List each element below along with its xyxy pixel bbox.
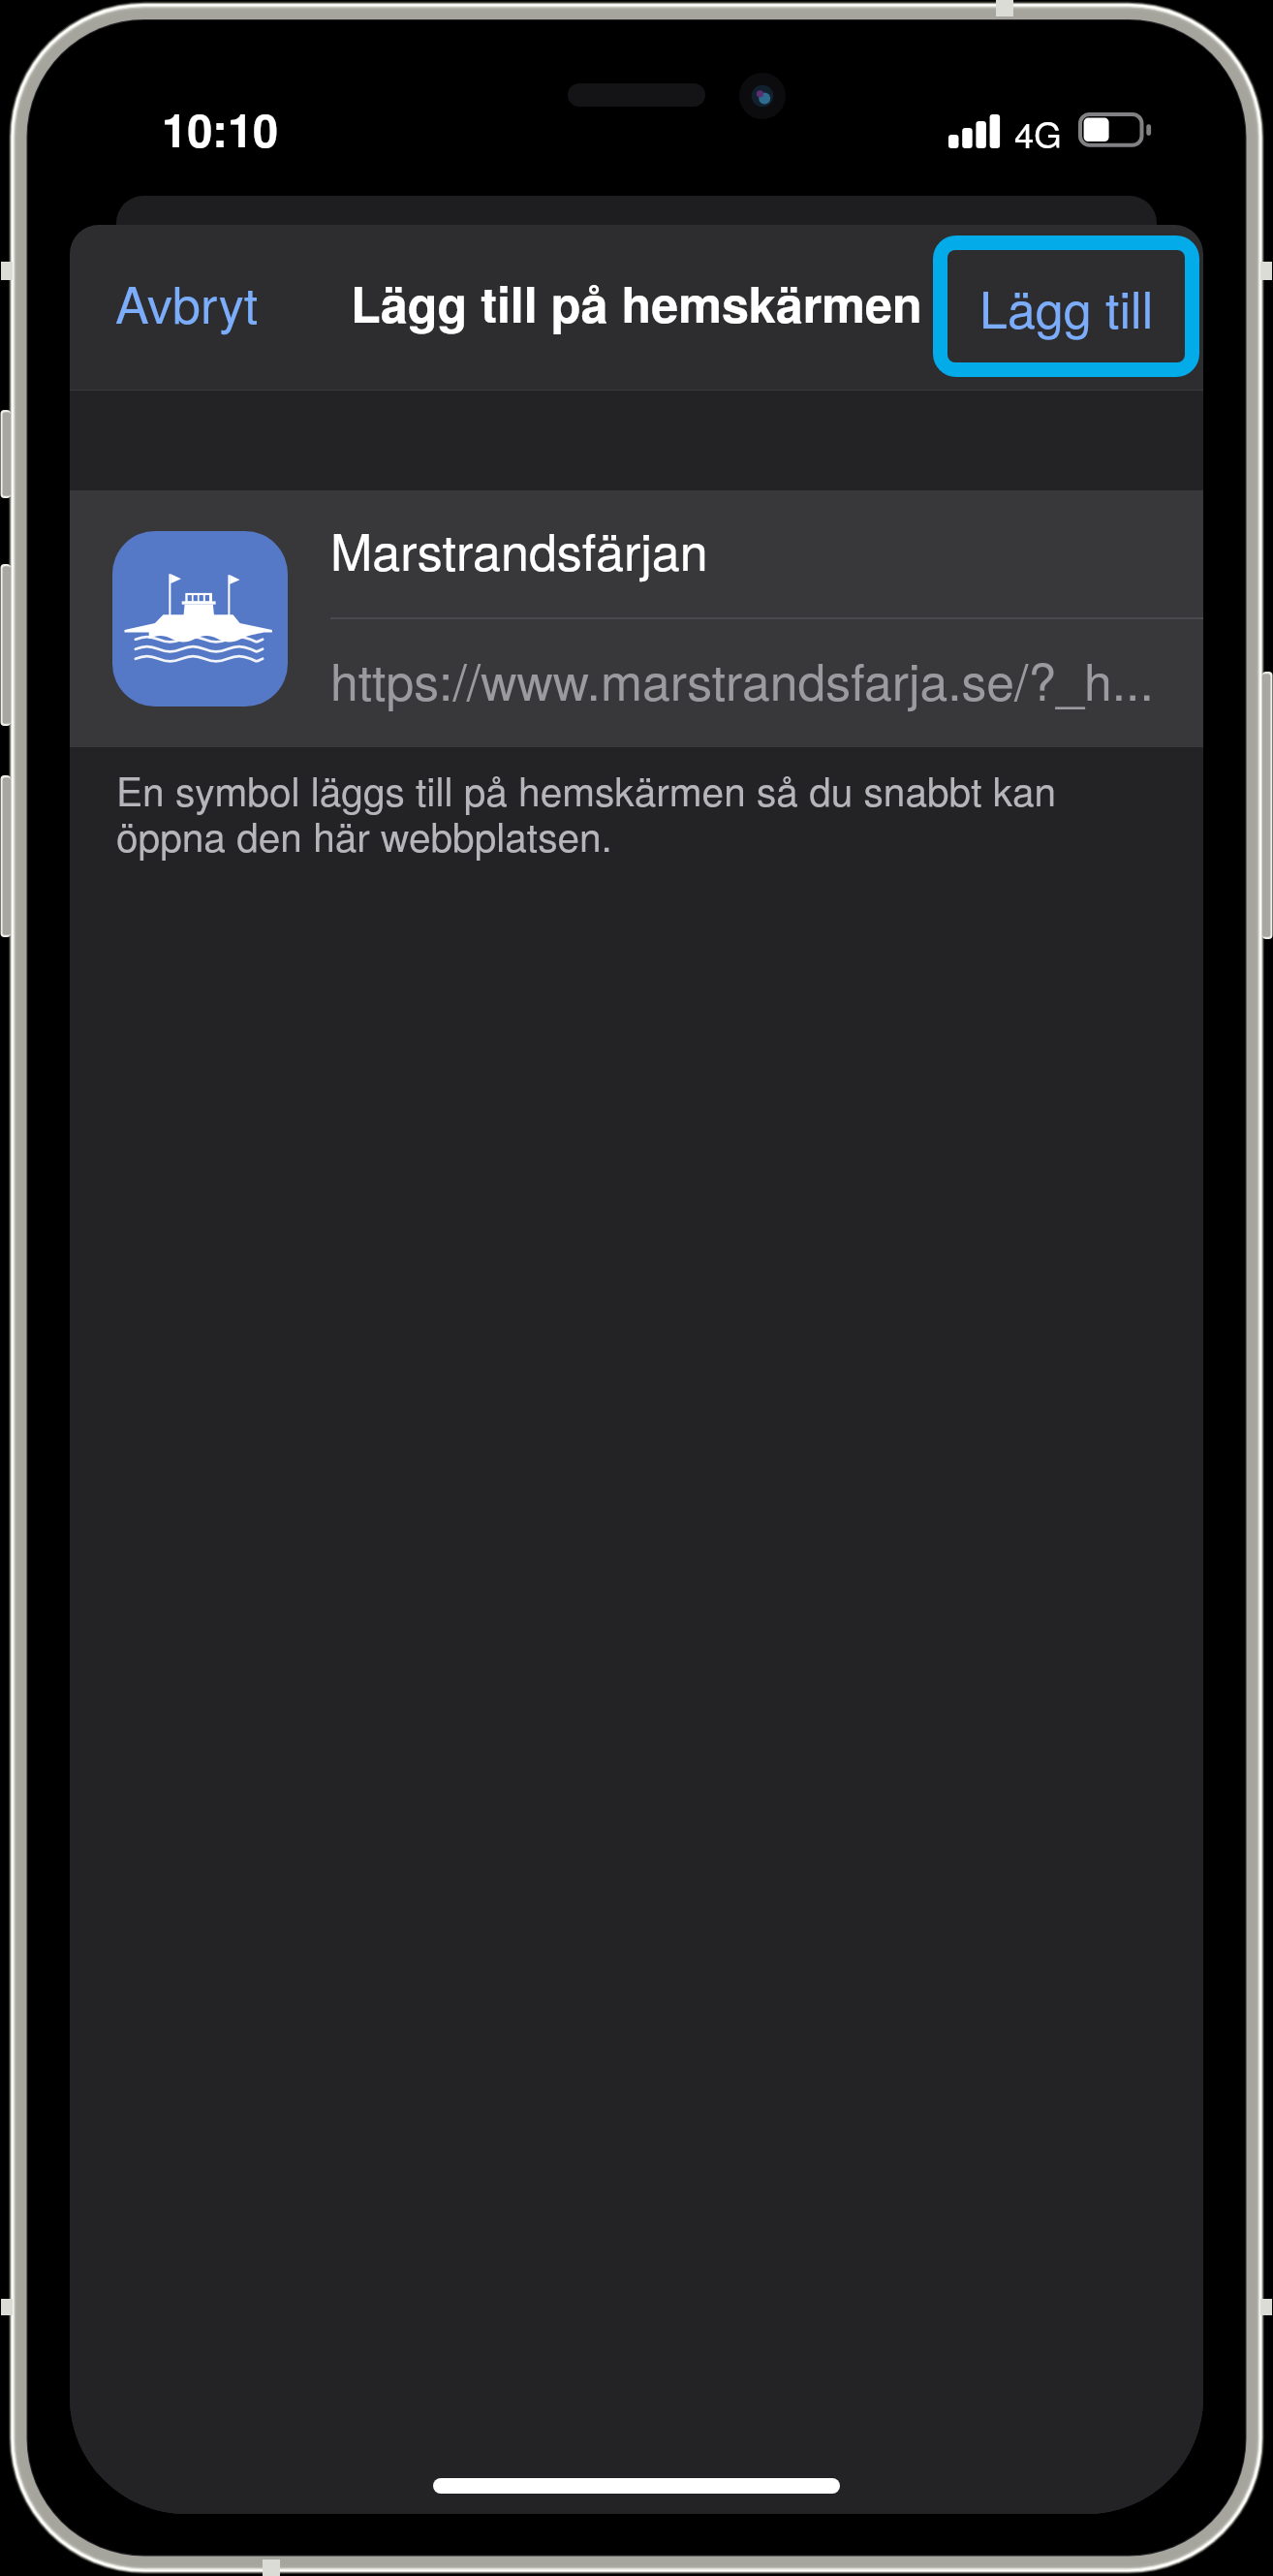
staticText: 10:10 <box>162 96 279 161</box>
staticText: https://www.marstrandsfarja.se/?_h... <box>330 644 1154 715</box>
staticText: Avbryt <box>115 266 259 337</box>
staticText: Marstrandsfärjan <box>330 513 708 584</box>
button[interactable]: Lägg till <box>933 236 1199 377</box>
other: Marstrandsfärjan app icon <box>112 531 288 707</box>
staticText: Lägg till <box>979 270 1154 342</box>
staticText: En symbol läggs till på hemskärmen så du… <box>116 761 1145 863</box>
button[interactable]: Avbryt <box>70 250 282 364</box>
staticText: 4G <box>1014 108 1062 158</box>
staticText: Lägg till på hemskärmen <box>351 267 922 337</box>
button[interactable]: Marstrandsfärjan app icon <box>70 490 1203 747</box>
